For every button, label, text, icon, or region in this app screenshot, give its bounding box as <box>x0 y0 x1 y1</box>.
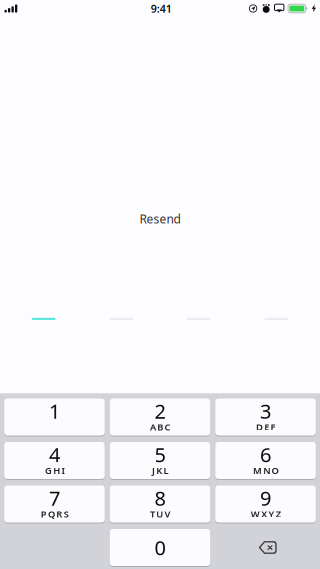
button[interactable]: 8 <box>110 485 210 522</box>
button[interactable]: 0 <box>110 529 210 566</box>
staticText: JKL <box>152 464 172 476</box>
staticText: 7 <box>49 485 60 511</box>
staticText: DEF <box>256 421 279 433</box>
button[interactable]: Delete <box>215 529 316 566</box>
staticText: 0 <box>154 534 165 561</box>
staticText: GHI <box>45 464 68 476</box>
staticText: 2 <box>154 398 165 424</box>
staticText: 5 <box>154 441 165 468</box>
button[interactable]: 9 <box>215 485 316 522</box>
staticText: Resend <box>139 211 180 227</box>
button[interactable]: 4 <box>4 442 105 479</box>
button[interactable]: 2 <box>110 398 210 435</box>
staticText: PQRS <box>41 508 72 520</box>
button[interactable]: 7 <box>4 485 105 522</box>
button[interactable]: 6 <box>215 442 316 479</box>
staticText: 1 <box>49 398 60 424</box>
staticText: 9:41 <box>151 1 172 16</box>
staticText: TUV <box>150 508 174 520</box>
staticText: 4 <box>49 441 60 468</box>
staticText: 9 <box>260 485 271 511</box>
button[interactable]: 5 <box>110 442 210 479</box>
button[interactable]: Resend <box>139 211 180 227</box>
button[interactable]: 3 <box>215 398 316 435</box>
staticText: 3 <box>260 398 271 424</box>
staticText: ABC <box>150 421 174 433</box>
staticText: 8 <box>154 485 165 511</box>
button[interactable]: 1 <box>4 398 105 435</box>
staticText: WXYZ <box>251 508 284 520</box>
staticText: MNO <box>253 464 282 476</box>
staticText: 6 <box>260 441 271 468</box>
